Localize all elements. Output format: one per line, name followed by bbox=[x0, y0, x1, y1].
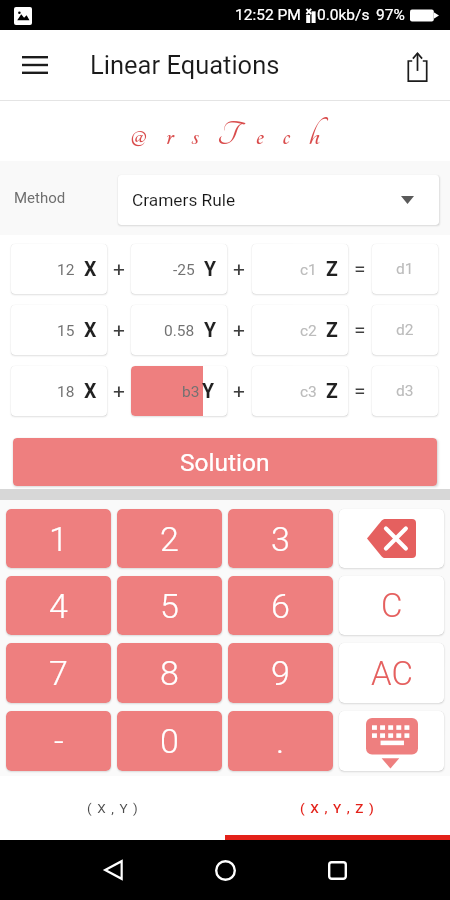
button[interactable]: -25 bbox=[131, 244, 227, 294]
button[interactable]: 6 bbox=[228, 576, 333, 635]
button[interactable]: AC bbox=[339, 643, 444, 703]
staticText: 6 bbox=[271, 586, 290, 626]
staticText: 12:52 PM bbox=[235, 6, 301, 24]
staticText: 15 bbox=[57, 322, 75, 340]
button[interactable]: c1 bbox=[252, 244, 348, 294]
button[interactable]: 12 bbox=[11, 244, 107, 294]
staticText: 0.58 bbox=[164, 322, 195, 340]
button[interactable]: 8 bbox=[117, 643, 222, 703]
staticText: 12 bbox=[57, 261, 75, 279]
button[interactable]: ( X , Y ) bbox=[0, 776, 225, 840]
staticText: . bbox=[276, 721, 285, 761]
button[interactable]: Home bbox=[169, 840, 281, 900]
button[interactable]: 15 bbox=[11, 305, 107, 355]
staticText: Solution bbox=[180, 448, 270, 477]
button[interactable]: 2 bbox=[117, 509, 222, 568]
button[interactable]: Hide keyboard bbox=[339, 711, 444, 771]
button[interactable]: c2 bbox=[252, 305, 348, 355]
button[interactable]: Solution bbox=[13, 438, 437, 486]
staticText: ( X , Y ) bbox=[87, 800, 139, 816]
button[interactable]: d1 bbox=[372, 244, 438, 294]
button[interactable]: 4 bbox=[6, 576, 111, 635]
staticText: 4 bbox=[49, 586, 68, 626]
staticText: c2 bbox=[300, 322, 317, 340]
button[interactable]: Share bbox=[394, 42, 440, 88]
staticText: Cramers Rule bbox=[132, 190, 236, 210]
staticText: Z bbox=[326, 319, 338, 342]
button[interactable]: b3 bbox=[131, 366, 227, 416]
staticText: X bbox=[84, 258, 97, 281]
staticText: + bbox=[113, 318, 125, 343]
staticText: = bbox=[354, 379, 366, 404]
staticText: 0 bbox=[160, 721, 179, 761]
button[interactable]: C bbox=[339, 576, 444, 635]
button[interactable]: Recents bbox=[281, 840, 393, 900]
button[interactable]: c3 bbox=[252, 366, 348, 416]
staticText: 97% bbox=[376, 6, 405, 24]
button[interactable]: 1 bbox=[6, 509, 111, 568]
button[interactable]: Menu bbox=[12, 42, 58, 88]
staticText: 7 bbox=[49, 653, 68, 693]
button[interactable]: d2 bbox=[372, 305, 438, 355]
button[interactable]: 3 bbox=[228, 509, 333, 568]
staticText: Y bbox=[202, 380, 215, 403]
staticText: Y bbox=[204, 319, 217, 342]
staticText: = bbox=[354, 318, 366, 343]
staticText: d1 bbox=[396, 260, 414, 278]
staticText: C bbox=[381, 586, 403, 625]
staticText: -25 bbox=[173, 261, 195, 279]
staticText: Z bbox=[326, 258, 338, 281]
staticText: ( X , Y , Z ) bbox=[300, 800, 375, 816]
staticText: Linear Equations bbox=[90, 50, 280, 80]
staticText: X bbox=[84, 319, 97, 342]
button[interactable]: Backspace bbox=[339, 509, 444, 568]
button[interactable]: 7 bbox=[6, 643, 111, 703]
staticText: 8 bbox=[160, 653, 179, 693]
staticText: d2 bbox=[396, 321, 414, 339]
staticText: c1 bbox=[300, 261, 317, 279]
staticText: = bbox=[354, 257, 366, 282]
staticText: AC bbox=[371, 654, 413, 693]
button[interactable]: 0 bbox=[117, 711, 222, 771]
staticText: + bbox=[233, 379, 245, 404]
button[interactable]: Cramers Rule bbox=[118, 175, 439, 225]
staticText: 3 bbox=[271, 519, 290, 559]
staticText: 2 bbox=[160, 519, 179, 559]
staticText: 1 bbox=[49, 519, 68, 559]
button[interactable]: 5 bbox=[117, 576, 222, 635]
staticText: + bbox=[233, 318, 245, 343]
staticText: - bbox=[54, 721, 64, 761]
button[interactable]: d3 bbox=[372, 366, 438, 416]
staticText: + bbox=[113, 257, 125, 282]
staticText: 0.0kb/s bbox=[317, 6, 370, 24]
staticText: 9 bbox=[271, 653, 290, 693]
button[interactable]: 9 bbox=[228, 643, 333, 703]
button[interactable]: . bbox=[228, 711, 333, 771]
button[interactable]: - bbox=[6, 711, 111, 771]
button[interactable]: 18 bbox=[11, 366, 107, 416]
staticText: X bbox=[84, 380, 97, 403]
staticText: + bbox=[113, 379, 125, 404]
staticText: 5 bbox=[160, 586, 179, 626]
staticText: @rsTech bbox=[130, 118, 339, 152]
staticText: Method bbox=[14, 189, 66, 207]
staticText: b3 bbox=[182, 383, 200, 401]
staticText: Z bbox=[326, 380, 338, 403]
staticText: c3 bbox=[300, 383, 317, 401]
staticText: Y bbox=[204, 258, 217, 281]
button[interactable]: Back bbox=[57, 840, 169, 900]
staticText: d3 bbox=[396, 382, 414, 400]
button[interactable]: 0.58 bbox=[131, 305, 227, 355]
button[interactable]: ( X , Y , Z ) bbox=[225, 776, 450, 840]
staticText: 18 bbox=[57, 383, 75, 401]
staticText: + bbox=[233, 257, 245, 282]
